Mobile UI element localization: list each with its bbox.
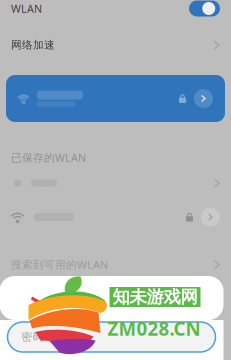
button[interactable] [0,206,231,228]
button[interactable] [0,75,231,122]
staticText: 网络加速 [11,38,55,51]
staticText: ZM028.CN [107,316,200,341]
staticText: 密码 [21,330,43,343]
staticText: WLAN [11,1,42,16]
staticText: 搜索到可用的WLAN [11,257,108,272]
button[interactable]: WLAN switch [0,0,231,17]
staticText: 已保存的WLAN [11,150,86,165]
button[interactable]: 网络加速 [0,38,231,52]
staticText: 知未游戏网 [112,286,197,308]
button[interactable]: 密码 [7,322,215,352]
